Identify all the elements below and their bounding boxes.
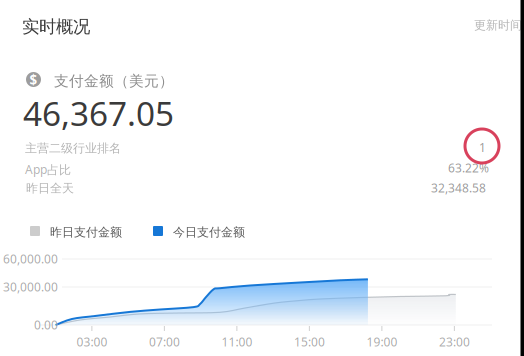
staticText: 实时概况: [22, 16, 90, 37]
staticText: 03:00: [76, 334, 107, 350]
staticText: App占比: [25, 161, 71, 177]
staticText: 主营二级行业排名: [25, 141, 121, 156]
staticText: 今日支付金额: [173, 225, 245, 240]
staticText: 1: [479, 139, 486, 155]
staticText: 昨日全天: [26, 181, 74, 196]
staticText: 更新时间: [474, 18, 522, 33]
staticText: 63.22%: [448, 160, 489, 176]
staticText: $: [29, 71, 37, 88]
staticText: 15:00: [294, 334, 325, 350]
staticText: 支付金额（美元）: [54, 72, 174, 90]
staticText: 0.00: [34, 317, 58, 333]
staticText: 23:00: [439, 334, 470, 350]
staticText: 昨日支付金额: [50, 225, 122, 240]
staticText: 32,348.58: [431, 180, 486, 196]
staticText: 07:00: [149, 334, 180, 350]
staticText: 11:00: [221, 334, 252, 350]
staticText: 30,000.00: [3, 279, 58, 295]
staticText: 60,000.00: [3, 251, 58, 267]
staticText: 46,367.05: [23, 91, 174, 135]
staticText: 19:00: [366, 334, 397, 350]
